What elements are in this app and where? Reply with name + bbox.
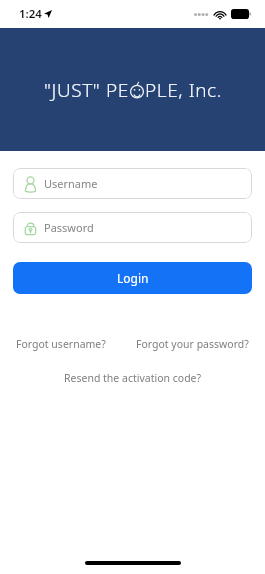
staticText: Forgot username? [16,337,106,351]
button[interactable]: Forgot username? [13,334,109,354]
button[interactable]: Forgot your password? [133,334,252,354]
staticText: Resend the activation code? [64,371,202,385]
staticText: PLE, Inc. [145,77,222,103]
button[interactable]: Resend the activation code? [58,368,208,388]
button[interactable]: Password [13,212,252,243]
button[interactable]: Login [13,262,252,294]
staticText: Forgot your password? [136,337,249,351]
staticText: 1:24 [19,6,42,22]
staticText: "JUST" PE [44,77,129,103]
staticText: Password [44,220,94,235]
staticText: Username [44,176,98,191]
button[interactable]: Username [13,168,252,199]
staticText: Login [117,270,149,286]
